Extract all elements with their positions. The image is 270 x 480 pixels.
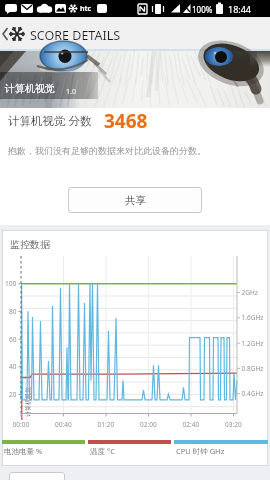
staticText: 100% [192, 4, 213, 15]
button[interactable] [0, 17, 120, 51]
staticText: 抱歉，我们没有足够的数据来对比此设备的分数。 [8, 145, 206, 156]
button[interactable]: 共享 [68, 187, 202, 213]
staticText: 温度 °C [90, 446, 115, 456]
button[interactable] [9, 472, 65, 480]
staticText: 计算机视觉 [5, 82, 55, 95]
staticText: 计算机视觉 分数 [8, 113, 92, 129]
staticText: htc [80, 4, 92, 14]
staticText: SCORE DETAILS [30, 27, 121, 44]
staticText: 监控数据 [10, 238, 50, 251]
staticText: 共享 [125, 194, 146, 207]
staticText: 3468 [104, 108, 148, 134]
staticText: CPU 时钟 GHz [176, 446, 225, 456]
staticText: 1.0 [66, 87, 76, 97]
staticText: 电池电量 % [4, 446, 43, 456]
staticText: 18:44 [228, 3, 252, 15]
